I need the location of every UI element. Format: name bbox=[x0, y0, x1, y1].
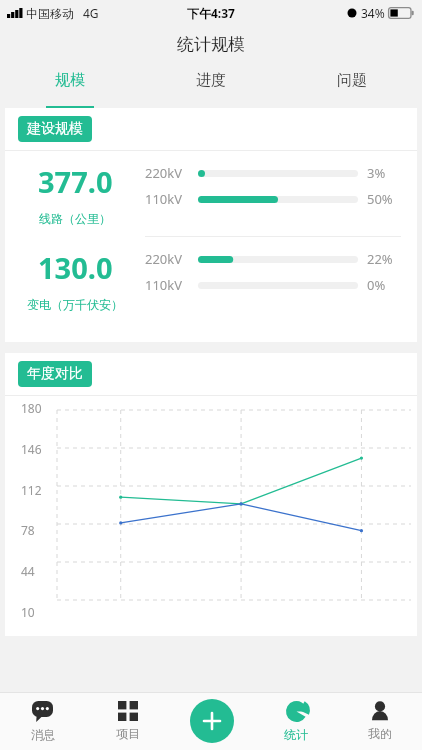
staticText: 下午4:37 bbox=[187, 5, 235, 21]
staticText: 78 bbox=[21, 522, 35, 538]
staticText: 3% bbox=[367, 164, 386, 182]
staticText: 10 bbox=[21, 604, 35, 620]
staticText: 180 bbox=[21, 400, 42, 416]
staticText: 110kV bbox=[145, 190, 183, 208]
staticText: 44 bbox=[21, 563, 35, 579]
button[interactable]: Add bbox=[170, 692, 254, 750]
staticText: 中国移动 bbox=[26, 6, 74, 21]
staticText: 130.0 bbox=[38, 248, 113, 287]
staticText: 4G bbox=[83, 5, 99, 21]
staticText: 377.0 bbox=[38, 162, 113, 201]
staticText: 进度 bbox=[196, 71, 226, 90]
staticText: 220kV bbox=[145, 250, 183, 268]
staticText: 112 bbox=[21, 482, 42, 498]
staticText: 项目 bbox=[116, 726, 140, 741]
staticText: 146 bbox=[21, 441, 42, 457]
staticText: 规模 bbox=[55, 71, 85, 90]
button[interactable]: 规模 bbox=[0, 62, 140, 108]
staticText: 220kV bbox=[145, 164, 183, 182]
staticText: 22% bbox=[367, 250, 393, 268]
button[interactable]: 消息 bbox=[0, 692, 85, 750]
staticText: 消息 bbox=[31, 727, 55, 742]
staticText: 110kV bbox=[145, 276, 183, 294]
button[interactable]: 项目 bbox=[85, 692, 170, 750]
button[interactable]: 我的 bbox=[338, 692, 422, 750]
staticText: 统计 bbox=[284, 727, 308, 742]
staticText: 我的 bbox=[368, 726, 392, 741]
staticText: 统计规模 bbox=[177, 34, 245, 55]
button[interactable]: 统计 bbox=[254, 692, 338, 750]
staticText: 变电（万千伏安） bbox=[27, 297, 123, 312]
staticText: 建设规模 bbox=[27, 120, 83, 138]
staticText: 50% bbox=[367, 190, 393, 208]
staticText: 问题 bbox=[337, 71, 367, 90]
button[interactable]: 问题 bbox=[281, 62, 422, 108]
staticText: 线路（公里） bbox=[39, 211, 111, 226]
staticText: 年度对比 bbox=[27, 365, 83, 383]
staticText: 0% bbox=[367, 276, 386, 294]
staticText: 34% bbox=[361, 5, 385, 21]
button[interactable]: 进度 bbox=[140, 62, 281, 108]
